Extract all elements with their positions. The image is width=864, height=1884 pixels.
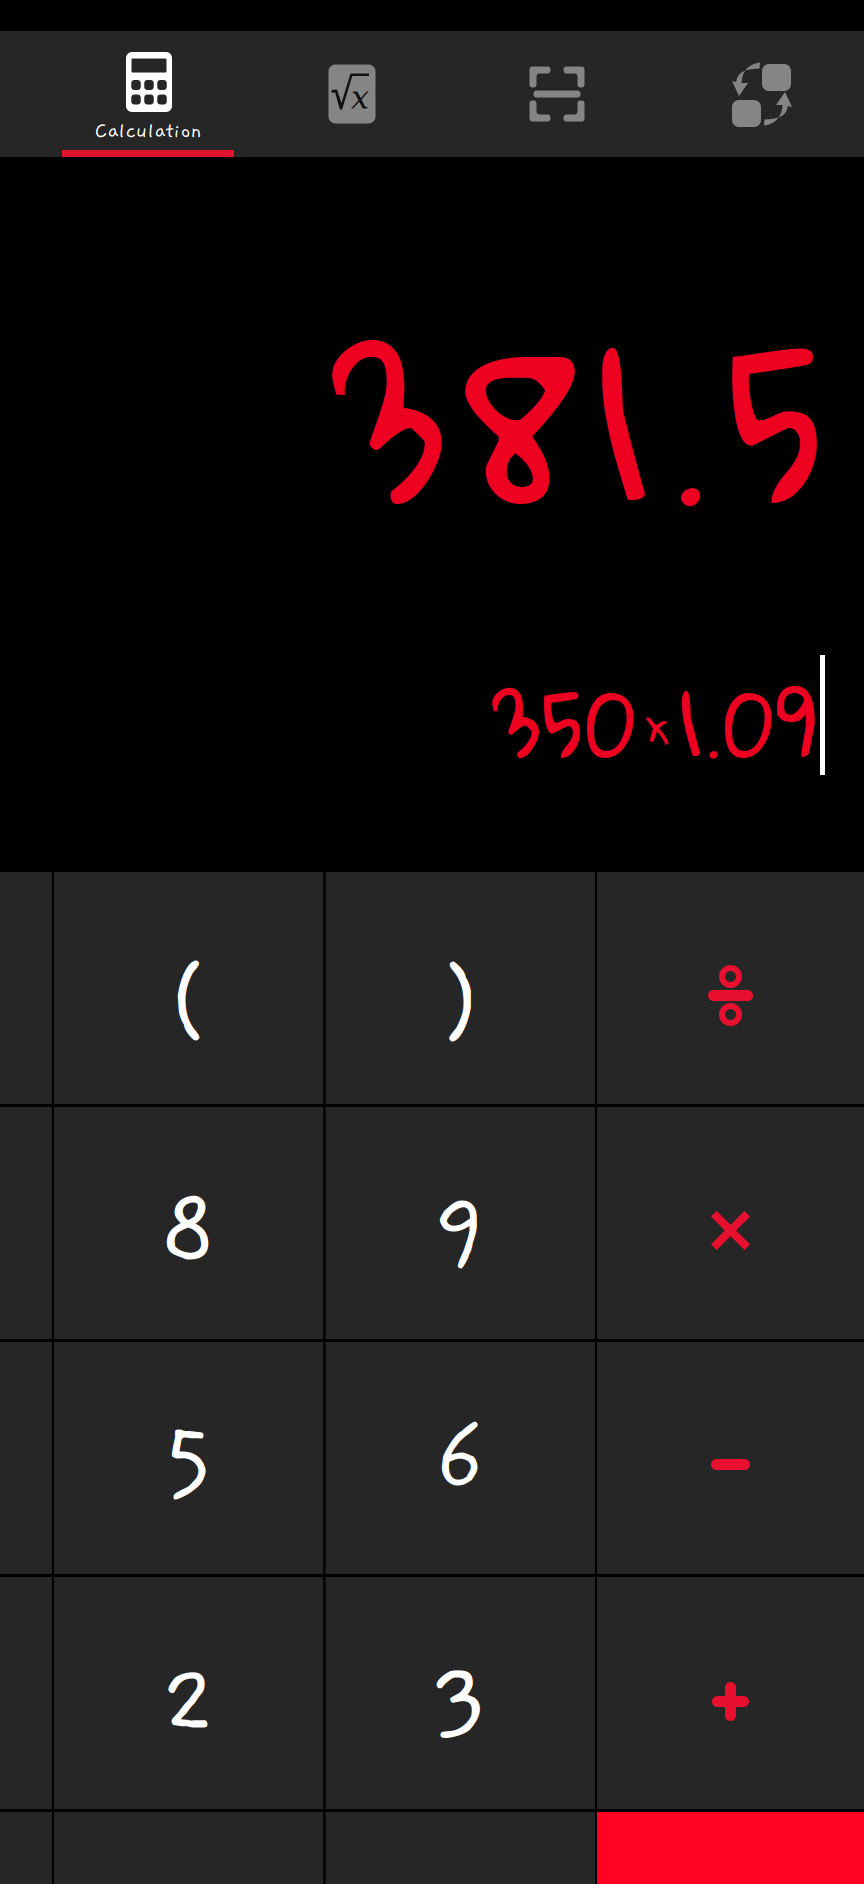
button[interactable]: [0, 1577, 52, 1812]
button[interactable]: Unit converter: [714, 31, 810, 157]
button[interactable]: [0, 1342, 52, 1577]
button[interactable]: 2: [54, 1577, 323, 1812]
button[interactable]: [0, 1107, 52, 1342]
staticText: 350×1.09: [492, 638, 816, 807]
staticText: 6: [434, 1406, 486, 1514]
button[interactable]: 6: [325, 1342, 595, 1577]
staticText: (: [165, 948, 213, 1056]
button[interactable]: (: [54, 872, 323, 1107]
staticText: Calculation: [94, 119, 201, 143]
staticText: 5: [162, 1406, 215, 1514]
button[interactable]: ): [325, 872, 595, 1107]
button[interactable]: Minus: [597, 1342, 864, 1577]
staticText: 381.5: [332, 223, 824, 619]
staticText: ): [436, 948, 484, 1056]
button[interactable]: Calculation: [60, 31, 236, 157]
button[interactable]: Scientific functions: [304, 31, 400, 157]
button[interactable]: [0, 872, 52, 1107]
button[interactable]: Divide: [597, 872, 864, 1107]
staticText: 8: [159, 1174, 218, 1282]
button[interactable]: 8: [54, 1107, 323, 1342]
staticText: 2: [161, 1647, 217, 1755]
button[interactable]: Scan: [509, 31, 605, 157]
staticText: 3: [432, 1647, 489, 1755]
button[interactable]: 5: [54, 1342, 323, 1577]
button[interactable]: 3: [325, 1577, 595, 1812]
button[interactable]: Multiply: [597, 1107, 864, 1342]
button[interactable]: 9: [325, 1107, 595, 1342]
staticText: 9: [432, 1174, 488, 1282]
button[interactable]: Plus: [597, 1577, 864, 1812]
staticText: x: [351, 79, 369, 116]
